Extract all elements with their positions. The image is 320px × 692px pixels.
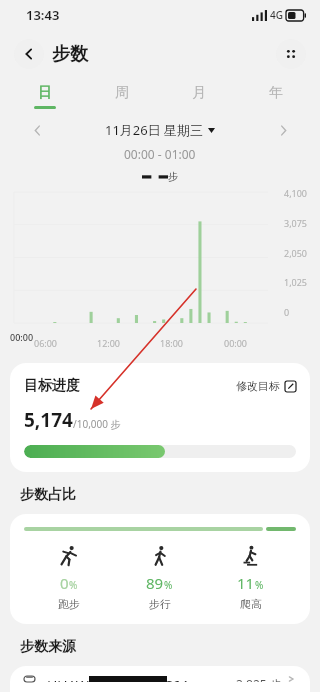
button[interactable]: 月 [160, 78, 237, 114]
button[interactable]: Previous day [26, 119, 48, 141]
staticText: HUAWEI Band 10-C64 [47, 676, 189, 682]
staticText: 修改目标 [236, 379, 280, 393]
staticText: 3,075 [284, 217, 308, 229]
button[interactable]: 11月26日 星期三 [48, 121, 272, 139]
staticText: 06:00 [34, 337, 58, 349]
staticText: 年 [269, 84, 283, 102]
button[interactable]: 目标进度 [10, 363, 310, 472]
staticText: 18:00 [160, 337, 184, 349]
staticText: /10,000 步 [73, 417, 121, 431]
staticText: 周 [115, 84, 129, 102]
staticText: 2,050 [284, 247, 308, 259]
staticText: 5,174 [24, 407, 73, 433]
staticText: 0 [284, 306, 290, 318]
staticText: 步 [168, 170, 178, 183]
staticText: 89 [146, 573, 164, 593]
staticText: 月 [192, 84, 206, 102]
staticText: 11月26日 星期三 [105, 121, 204, 139]
staticText: 爬高 [240, 597, 262, 611]
staticText: 0 [60, 573, 69, 593]
staticText: 00:00 [10, 331, 34, 343]
button[interactable]: Back [14, 39, 44, 69]
staticText: % [255, 578, 264, 592]
staticText: % [69, 578, 78, 592]
staticText: 00:00 [224, 337, 248, 349]
staticText: 步数占比 [20, 486, 76, 504]
staticText: 日 [38, 84, 52, 102]
button[interactable]: 日 [6, 78, 83, 114]
button[interactable]: More options [276, 39, 306, 69]
button[interactable]: 周 [83, 78, 160, 114]
staticText: 跑步 [58, 597, 80, 611]
staticText: % [164, 578, 173, 592]
staticText: 11 [237, 573, 255, 593]
button[interactable]: 0 [24, 545, 114, 611]
staticText: 步数 [52, 43, 88, 66]
staticText: 4,100 [284, 187, 308, 199]
button[interactable]: 89 [114, 545, 205, 611]
button[interactable]: 0 [10, 514, 310, 624]
button[interactable]: 年 [237, 78, 314, 114]
button[interactable]: 11 [205, 545, 296, 611]
staticText: 12:00 [97, 337, 121, 349]
button[interactable]: Next day [272, 119, 294, 141]
button[interactable]: HUAWEI Band 10-C64 [10, 666, 310, 692]
staticText: 1,025 [284, 276, 308, 288]
staticText: 00:00 - 01:00 [124, 146, 196, 162]
staticText: 3,825 步 [236, 676, 282, 682]
staticText: 步数来源 [20, 638, 76, 656]
staticText: 13:43 [26, 6, 60, 24]
staticText: 目标进度 [24, 377, 80, 395]
staticText: 4G [270, 8, 283, 22]
staticText: 步行 [149, 597, 171, 611]
